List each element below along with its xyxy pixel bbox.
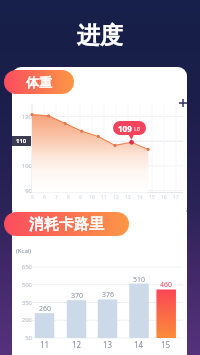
staticText: 13	[103, 339, 113, 350]
button[interactable]: 消耗卡路里	[4, 212, 129, 236]
staticText: 15	[149, 194, 155, 201]
staticText: 6	[43, 194, 46, 201]
staticText: 260	[39, 304, 52, 314]
staticText: 16	[161, 194, 167, 201]
staticText: 370	[71, 291, 84, 301]
staticText: 50	[25, 334, 32, 342]
staticText: 120	[21, 113, 32, 121]
staticText: LB	[134, 126, 141, 133]
staticText: 12	[72, 339, 82, 350]
staticText: 消耗卡路里	[29, 215, 104, 234]
staticText: 7	[55, 194, 58, 201]
staticText: 15	[161, 339, 171, 350]
staticText: (Kcal)	[16, 247, 32, 255]
staticText: 11	[101, 194, 107, 201]
staticText: 510	[133, 275, 146, 285]
staticText: 100	[21, 162, 32, 170]
staticText: 109	[118, 123, 132, 134]
staticText: 200	[21, 316, 32, 324]
staticText: 17	[173, 194, 179, 201]
staticText: 9	[79, 194, 82, 201]
button[interactable]: 体重	[4, 70, 74, 94]
staticText: 11	[40, 339, 50, 350]
staticText: 10	[89, 194, 95, 201]
staticText: 110	[21, 137, 32, 145]
staticText: 12	[113, 194, 119, 201]
staticText: 90	[25, 187, 32, 195]
staticText: 体重	[26, 74, 52, 90]
staticText: 进度	[77, 21, 123, 50]
staticText: 500	[21, 281, 32, 289]
staticText: 376	[102, 290, 115, 300]
staticText: 350	[21, 299, 32, 307]
staticText: 14	[134, 339, 144, 350]
button[interactable]: Add weight entry	[175, 95, 187, 111]
staticText: 8	[67, 194, 70, 201]
staticText: 14	[137, 194, 143, 201]
staticText: 460	[160, 280, 173, 290]
staticText: 5	[31, 194, 34, 201]
staticText: 110	[16, 137, 27, 145]
staticText: 13	[125, 194, 131, 201]
staticText: 650	[21, 263, 32, 271]
